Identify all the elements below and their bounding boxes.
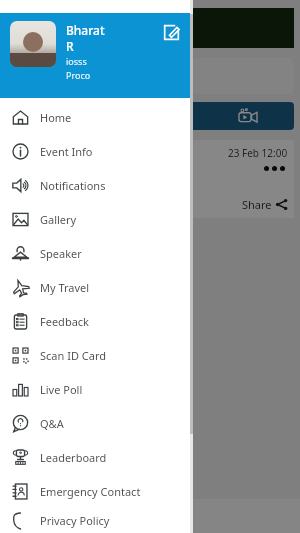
button[interactable]: Speaker: [0, 236, 190, 270]
staticText: Share: [242, 197, 272, 212]
staticText: Live Poll: [40, 382, 83, 397]
button[interactable]: Gallery: [0, 202, 190, 236]
button[interactable]: Event Info: [0, 134, 190, 168]
button[interactable]: Scan ID Card: [0, 338, 190, 372]
button[interactable]: Live Poll: [0, 372, 190, 406]
staticText: Speaker: [40, 246, 82, 261]
button[interactable]: Emergency Contact: [0, 474, 190, 508]
staticText: 23 Feb 12:00: [228, 146, 288, 160]
button[interactable]: Q&A: [0, 406, 190, 440]
button[interactable]: Edit profile: [160, 21, 182, 43]
staticText: Event Info: [40, 144, 93, 159]
staticText: Privacy Policy: [40, 513, 110, 528]
staticText: Home: [40, 110, 72, 125]
button[interactable]: Leaderboard: [0, 440, 190, 474]
staticText: Bharat: [66, 22, 105, 38]
button[interactable]: Privacy Policy: [0, 508, 190, 533]
staticText: R: [66, 38, 74, 54]
button[interactable]: Notifications: [0, 168, 190, 202]
staticText: Scan ID Card: [40, 348, 106, 363]
button[interactable]: Feedback: [0, 304, 190, 338]
staticText: My Travel: [40, 280, 90, 295]
button[interactable]: [6, 102, 294, 130]
button[interactable]: My Travel: [0, 270, 190, 304]
staticText: Q&A: [40, 416, 64, 431]
staticText: Gallery: [40, 212, 77, 227]
staticText: Notifications: [40, 178, 106, 193]
button[interactable]: Bharat: [0, 13, 190, 98]
button[interactable]: Home: [0, 100, 190, 134]
button[interactable]: Share: [242, 197, 288, 212]
staticText: Leaderboard: [40, 450, 107, 465]
staticText: Feedback: [40, 314, 89, 329]
staticText: Proco: [66, 69, 91, 81]
staticText: iosss: [66, 55, 87, 67]
staticText: Emergency Contact: [40, 484, 141, 499]
